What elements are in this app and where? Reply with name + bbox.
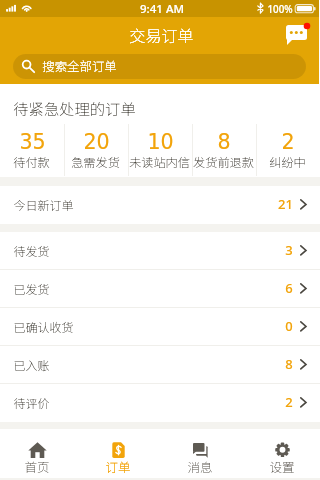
button[interactable]: 20 [64,124,128,176]
staticText: 已入账 [13,356,50,373]
staticText: 待发货 [13,242,50,259]
button[interactable]: 今日新订单 [0,186,320,224]
staticText: 待付款 [13,153,50,171]
staticText: 搜索全部订单 [42,57,117,75]
staticText: 已入账 [13,356,50,373]
staticText: 2 [281,130,295,154]
button[interactable]: 待评价 [0,384,320,422]
staticText: 8 [285,355,293,373]
button[interactable]: 已确认收货 [0,308,320,346]
staticText: 急需发货 [71,153,120,171]
staticText: 首页 [24,457,50,475]
staticText: 发货前退款 [193,153,254,171]
staticText: 100% [267,3,293,16]
button[interactable]: 35 [0,124,64,176]
staticText: 35 [19,130,46,154]
staticText: 纠纷中 [269,153,306,171]
staticText: 已确认收货 [13,318,74,335]
button[interactable]: 2 [256,124,320,176]
button[interactable]: 首页 [0,429,76,477]
staticText: 首页 [24,457,50,475]
staticText: 设置 [269,457,295,475]
staticText: 交易订单 [129,23,194,46]
button[interactable]: 待发货 [0,232,320,270]
button[interactable]: 10 [128,124,192,176]
staticText: 搜索全部订单 [42,57,117,75]
staticText: 2 [285,393,293,411]
staticText: 订单 [105,457,131,475]
button[interactable]: 消息 [163,429,239,477]
staticText: 8 [217,130,231,154]
staticText: 订单 [105,457,131,475]
staticText: 已发货 [13,280,50,297]
staticText: 20 [83,130,110,154]
staticText: 待付款 [13,153,50,171]
staticText: 发货前退款 [193,153,254,171]
staticText: 未读站内信 [129,153,190,171]
staticText: 已发货 [13,280,50,297]
staticText: 急需发货 [71,153,120,171]
staticText: 10 [147,130,174,154]
button[interactable]: 已入账 [0,346,320,384]
staticText: 待评价 [13,394,50,411]
staticText: 消息 [187,457,213,475]
staticText: 待评价 [13,394,50,411]
staticText: 21 [278,195,293,213]
button[interactable]: 搜索全部订单 [13,54,306,79]
staticText: 待发货 [13,242,50,259]
staticText: 已确认收货 [13,318,74,335]
button[interactable]: 已发货 [0,270,320,308]
staticText: 今日新订单 [13,196,74,213]
staticText: 3 [285,241,293,259]
staticText: 0 [285,317,293,335]
staticText: 待紧急处理的订单 [13,97,136,119]
staticText: 9:41 AM [140,1,184,17]
button[interactable]: Messages [282,19,312,47]
button[interactable]: 8 [192,124,256,176]
staticText: 设置 [269,457,295,475]
button[interactable]: 设置 [245,429,320,477]
staticText: 交易订单 [129,23,194,46]
staticText: 纠纷中 [269,153,306,171]
staticText: 待紧急处理的订单 [13,97,136,119]
staticText: 消息 [187,457,213,475]
staticText: 6 [285,279,293,297]
button[interactable]: 订单 [81,429,157,477]
staticText: 今日新订单 [13,196,74,213]
staticText: 未读站内信 [129,153,190,171]
